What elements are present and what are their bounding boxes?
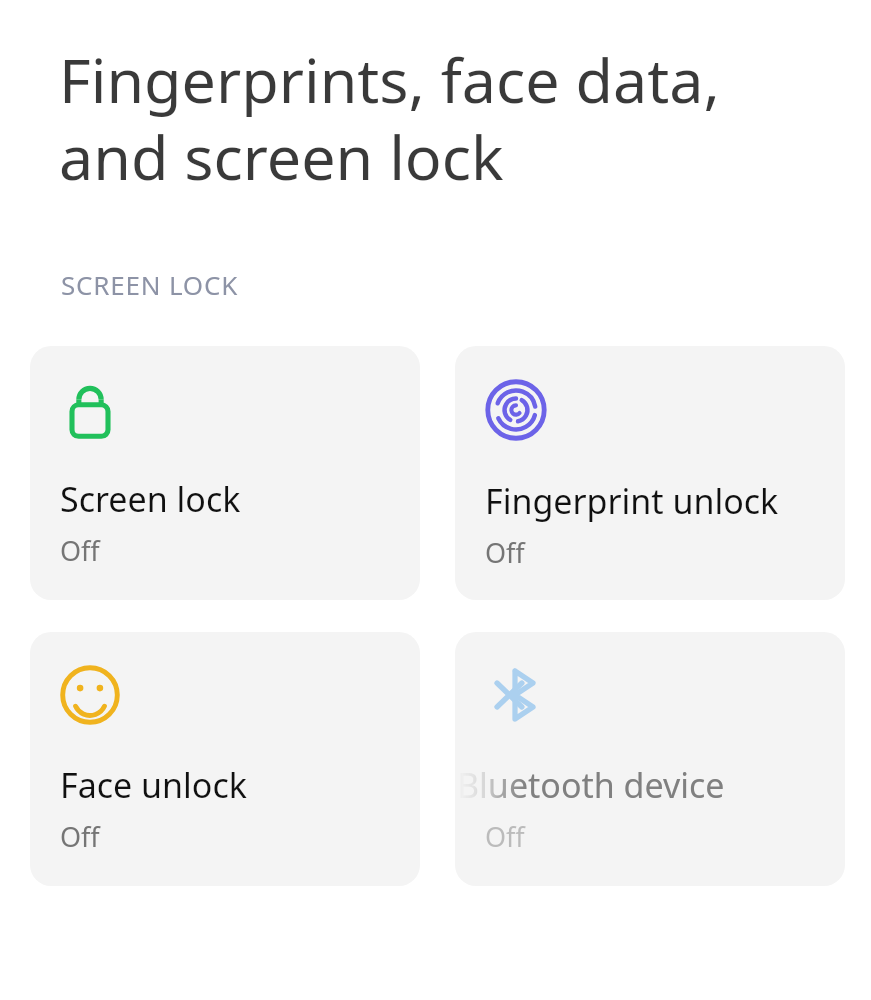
other: Bluetooth device xyxy=(485,665,545,725)
staticText: Fingerprints, face data, and screen lock xyxy=(59,38,720,198)
staticText: Face unlock xyxy=(60,762,247,808)
staticText: Off xyxy=(485,818,525,855)
other: Screen lock xyxy=(60,379,120,439)
button[interactable]: Bluetooth device xyxy=(455,632,845,886)
staticText: Off xyxy=(60,532,100,569)
staticText: Off xyxy=(485,534,525,571)
button[interactable]: Face unlock xyxy=(30,632,420,886)
staticText: SCREEN LOCK xyxy=(61,267,239,302)
staticText: Fingerprint unlock xyxy=(485,478,779,524)
other: Face unlock xyxy=(60,665,120,725)
staticText: Off xyxy=(60,818,100,855)
other: Fingerprint unlock xyxy=(485,379,547,441)
staticText: Bluetooth device xyxy=(457,762,725,808)
button[interactable]: Screen lock xyxy=(30,346,420,600)
staticText: Screen lock xyxy=(60,476,241,522)
button[interactable]: Fingerprint unlock xyxy=(455,346,845,600)
